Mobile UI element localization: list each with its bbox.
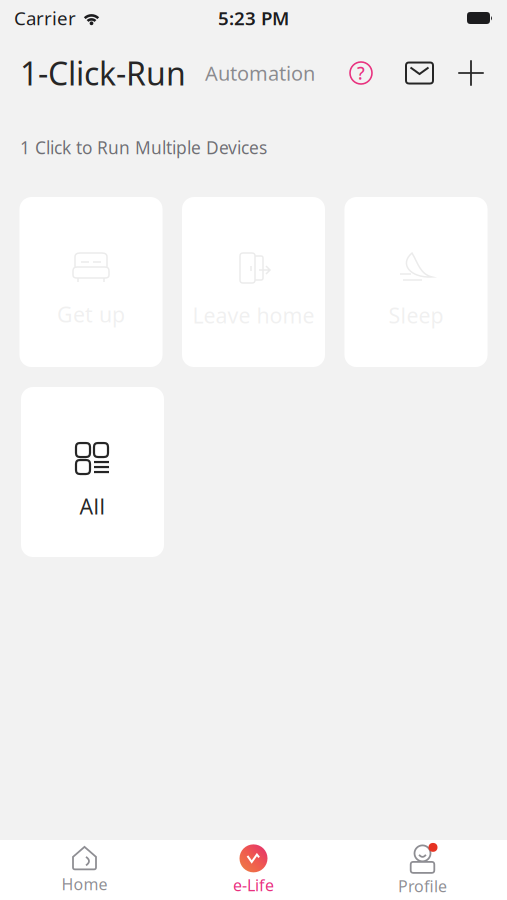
button[interactable]: Help <box>344 61 378 85</box>
staticText: Get up <box>57 300 125 328</box>
staticText: Home <box>61 873 107 895</box>
button[interactable]: Profile <box>338 835 507 900</box>
staticText: 1 Click to Run Multiple Devices <box>20 136 267 159</box>
staticText: Automation <box>205 60 315 86</box>
staticText: 1-Click-Run <box>20 52 186 94</box>
staticText: ? <box>357 61 365 84</box>
staticText: Sleep <box>388 301 443 329</box>
staticText: Leave home <box>192 301 314 329</box>
button[interactable]: All <box>21 387 164 557</box>
button[interactable]: e-Life <box>169 836 338 900</box>
staticText: Profile <box>398 875 447 897</box>
staticText: 5:23 PM <box>218 6 289 30</box>
button[interactable]: Messages <box>378 61 434 84</box>
staticText: All <box>79 492 105 520</box>
staticText: Carrier <box>14 6 76 30</box>
staticText: e-Life <box>233 874 274 896</box>
button[interactable]: Add <box>434 59 485 87</box>
button[interactable]: Home <box>0 837 169 900</box>
